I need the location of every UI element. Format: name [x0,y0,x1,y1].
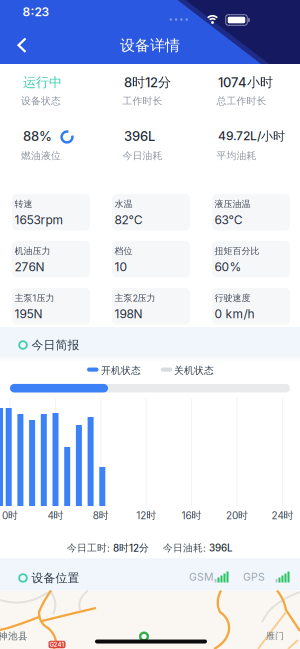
staticText: 24时 [271,509,293,522]
staticText: 关机状态 [174,364,214,377]
staticText: 今日简报 [31,338,79,352]
staticText: 396L [209,542,233,554]
staticText: 开机状态 [101,364,141,377]
staticText: 今日油耗 [122,150,162,162]
staticText: 276N [14,260,44,274]
staticText: 工作时长 [122,95,162,107]
staticText: 88% [23,128,52,144]
staticText: GPS [243,571,265,583]
staticText: 设备位置 [31,571,79,585]
staticText: 今日工时: [67,542,113,554]
staticText: 总工作时长 [216,95,266,107]
staticText: 1074小时 [218,74,273,90]
staticText: 0 km/h [214,307,254,321]
button[interactable]: Back [0,23,44,67]
staticText: 8时12分 [113,542,149,554]
staticText: 行驶速度 [214,292,250,304]
staticText: GSM [189,571,213,583]
staticText: 8:23 [22,5,49,19]
staticText: 今日油耗: [163,542,209,554]
staticText: 主泵2压力 [114,292,155,304]
staticText: 0时 [2,509,18,522]
staticText: 运行中 [23,74,62,90]
staticText: 8时12分 [124,74,171,90]
staticText: 8时 [93,509,109,522]
staticText: 档位 [114,245,132,257]
staticText: 1653rpm [14,213,63,227]
staticText: 主泵1压力 [14,292,54,304]
staticText: 4时 [47,509,63,522]
staticText: 49.72L/小时 [218,129,285,144]
staticText: 机油压力 [14,245,50,257]
staticText: 60% [214,260,241,274]
staticText: 雁门 [266,630,284,642]
staticText: 396L [124,128,155,144]
staticText: 转速 [14,198,32,210]
staticText: 10 [114,260,127,274]
staticText: 液压油温 [214,198,250,210]
staticText: 195N [14,307,42,321]
staticText: 82℃ [114,213,142,227]
staticText: 20时 [226,509,248,522]
staticText: 水温 [114,198,132,210]
staticText: 16时 [182,509,202,522]
staticText: 扭矩百分比 [214,245,259,257]
staticText: 设备详情 [120,36,180,55]
staticText: G241 [49,641,64,648]
staticText: 燃油液位 [21,150,61,162]
button[interactable]: 设备位置地图 [0,590,300,649]
staticText: 198N [114,307,142,321]
staticText: 设备状态 [21,95,61,107]
staticText: 神池县 [0,630,28,642]
staticText: 63℃ [214,213,242,227]
staticText: 12时 [136,509,156,522]
staticText: 平均油耗 [216,150,256,162]
